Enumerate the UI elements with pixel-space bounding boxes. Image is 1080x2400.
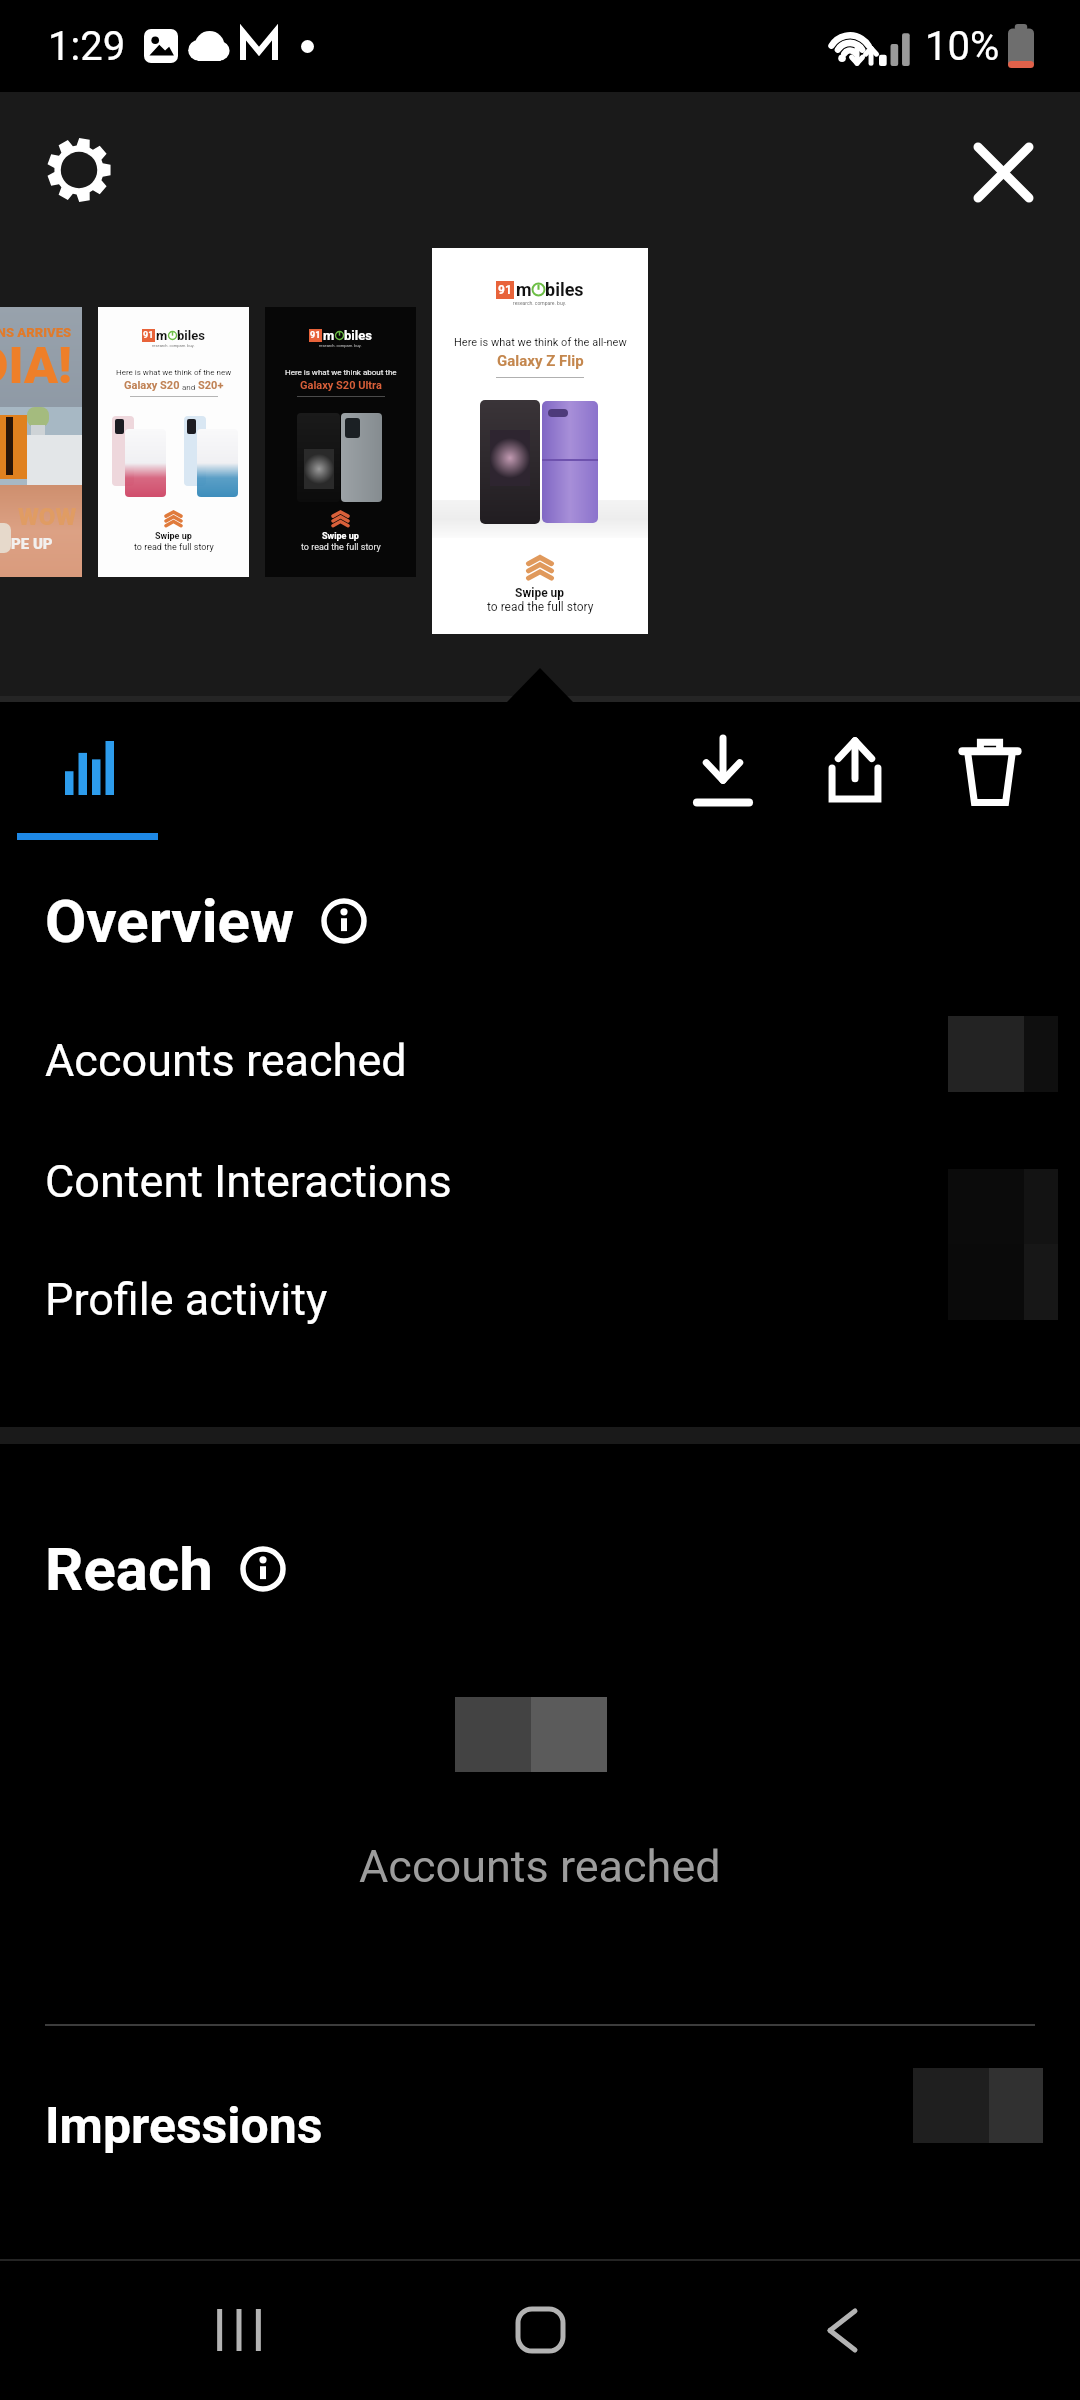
staticText: Swipe up bbox=[515, 586, 565, 600]
staticText: Galaxy S20 bbox=[124, 379, 180, 392]
button[interactable]: Delete bbox=[928, 711, 1052, 835]
staticText: biles bbox=[177, 328, 205, 343]
button[interactable]: Back bbox=[762, 2266, 922, 2394]
staticText: to read the full story bbox=[301, 542, 381, 553]
staticText: Profile activity bbox=[45, 1273, 328, 1326]
button[interactable]: Download bbox=[661, 711, 785, 835]
staticText: WOW bbox=[18, 503, 77, 531]
button[interactable]: Insights bbox=[20, 702, 160, 833]
staticText: Accounts reached bbox=[359, 1840, 721, 1893]
button[interactable]: Close bbox=[955, 124, 1051, 220]
staticText: Galaxy S20 Ultra bbox=[300, 379, 382, 392]
staticText: NDIA! bbox=[0, 337, 72, 396]
staticText: 10% bbox=[925, 23, 1000, 70]
staticText: PE UP bbox=[11, 535, 53, 553]
staticText: EPTIONS ARRIVES bbox=[0, 325, 72, 340]
staticText: to read the full story bbox=[487, 600, 594, 614]
staticText: research. compare. buy. bbox=[319, 343, 362, 348]
staticText: Overview bbox=[45, 886, 294, 956]
staticText: and bbox=[180, 383, 198, 392]
button[interactable]: Story 2 bbox=[98, 307, 249, 577]
button[interactable]: Story 1 bbox=[0, 307, 82, 577]
staticText: Here is what we think about the bbox=[285, 368, 397, 377]
staticText: Swipe up bbox=[155, 531, 192, 542]
staticText: Accounts reached bbox=[45, 1034, 407, 1087]
button[interactable]: Accounts reached bbox=[0, 1000, 1080, 1120]
staticText: Swipe up bbox=[322, 531, 359, 542]
staticText: m bbox=[323, 328, 335, 343]
button[interactable]: Settings bbox=[31, 122, 127, 218]
staticText: to read the full story bbox=[134, 542, 214, 553]
staticText: Content Interactions bbox=[45, 1155, 452, 1208]
staticText: 1:29 bbox=[48, 23, 126, 70]
staticText: S20+ bbox=[198, 379, 224, 392]
button[interactable]: Selected story bbox=[432, 248, 648, 634]
button[interactable]: Profile activity bbox=[0, 1239, 1080, 1359]
staticText: Reach bbox=[45, 1534, 213, 1604]
button[interactable]: Share bbox=[793, 711, 917, 835]
staticText: 91 bbox=[498, 283, 512, 297]
staticText: m bbox=[516, 279, 532, 300]
button[interactable]: Recent apps bbox=[159, 2266, 319, 2394]
staticText: Galaxy Z Flip bbox=[497, 352, 584, 370]
staticText: 91 bbox=[310, 330, 321, 341]
staticText: research. compare. buy. bbox=[152, 343, 195, 348]
button[interactable]: Story 3 bbox=[265, 307, 416, 577]
staticText: biles bbox=[344, 328, 372, 343]
staticText: Here is what we think of the all-new bbox=[454, 336, 627, 349]
staticText: m bbox=[156, 328, 168, 343]
staticText: Here is what we think of the new bbox=[116, 368, 232, 377]
staticText: research. compare. buy. bbox=[513, 300, 567, 306]
button[interactable]: Content Interactions bbox=[0, 1121, 1080, 1241]
staticText: 91 bbox=[143, 330, 154, 341]
staticText: biles bbox=[545, 279, 584, 300]
staticText: Impressions bbox=[45, 2097, 323, 2156]
button[interactable]: Home bbox=[460, 2266, 620, 2394]
